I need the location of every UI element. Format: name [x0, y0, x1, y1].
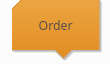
- button[interactable]: [0, 0, 110, 64]
